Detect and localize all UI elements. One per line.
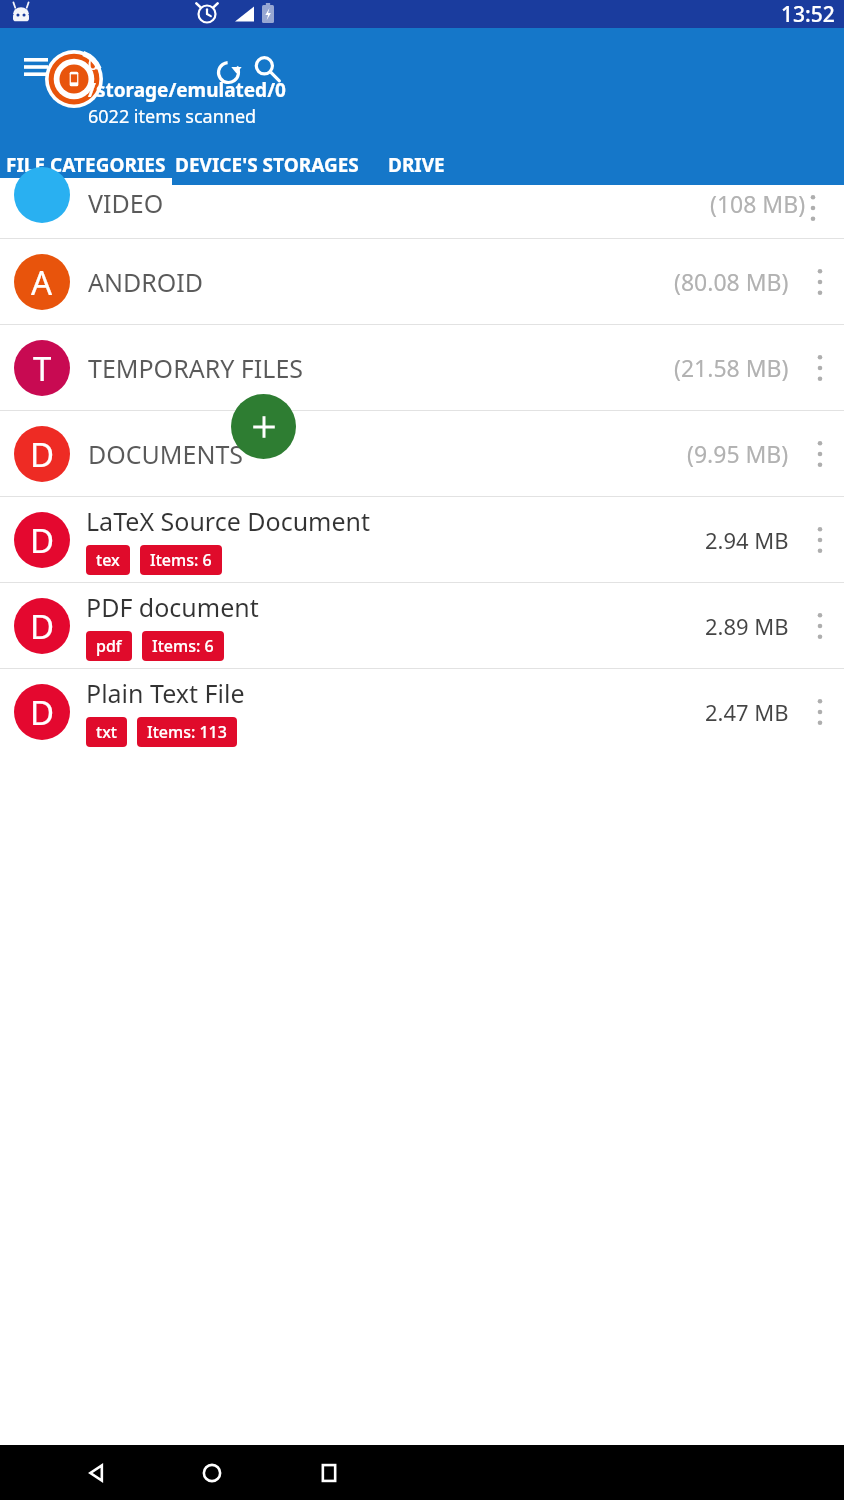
staticText: 0 [88, 52, 98, 75]
staticText: LaTeX Source Document [86, 504, 371, 538]
staticText: 6022 items scanned [88, 104, 257, 129]
staticText: /storage/emulated/0 [88, 77, 286, 103]
button[interactable]: D [0, 497, 844, 582]
staticText: DRIVE [388, 152, 445, 178]
staticText: DEVICE'S STORAGES [175, 152, 359, 178]
button[interactable]: DRIVE [362, 145, 452, 185]
staticText: D [30, 432, 55, 477]
button[interactable]: Refresh [205, 49, 251, 95]
button[interactable]: More options [797, 259, 843, 305]
staticText: Items: 113 [147, 721, 227, 743]
staticText: TEMPORARY FILES [88, 351, 674, 385]
button[interactable]: D [0, 411, 844, 496]
staticText: T [33, 346, 52, 391]
staticText: 2.89 MB [705, 611, 789, 641]
staticText: VIDEO [88, 186, 164, 220]
button[interactable]: More options [797, 431, 843, 477]
button[interactable]: More options [797, 345, 843, 391]
staticText: txt [96, 721, 117, 743]
staticText: (108 MB) [710, 188, 806, 219]
button[interactable]: Menu [13, 44, 59, 90]
button[interactable]: More options [797, 689, 843, 735]
button[interactable]: Search [243, 45, 289, 91]
button[interactable]: Back [73, 1449, 121, 1497]
button[interactable]: T [0, 325, 844, 410]
staticText: FILE CATEGORIES [6, 152, 166, 178]
staticText: 13:52 [781, 0, 835, 28]
staticText: tex [96, 549, 120, 571]
button[interactable]: A [0, 239, 844, 324]
button[interactable]: Storage [45, 50, 103, 108]
staticText: 2.47 MB [705, 697, 789, 727]
button[interactable]: FILE CATEGORIES [0, 145, 172, 185]
staticText: D [30, 518, 55, 563]
staticText: DOCUMENTS [88, 437, 687, 471]
staticText: PDF document [86, 590, 259, 624]
button[interactable]: Recent apps [305, 1449, 353, 1497]
staticText: A [31, 260, 53, 305]
staticText: D [30, 604, 55, 649]
button[interactable]: Home [188, 1449, 236, 1497]
staticText: pdf [96, 635, 122, 657]
staticText: (9.95 MB) [687, 438, 789, 469]
button[interactable]: D [0, 669, 844, 754]
staticText: 2.94 MB [705, 525, 789, 555]
staticText: Items: 6 [150, 549, 212, 571]
staticText: (21.58 MB) [674, 352, 789, 383]
staticText: Plain Text File [86, 676, 245, 710]
button[interactable]: More options [797, 603, 843, 649]
staticText: ANDROID [88, 265, 674, 299]
staticText: D [30, 690, 55, 735]
button[interactable]: More options [797, 517, 843, 563]
staticText: (80.08 MB) [674, 266, 789, 297]
staticText: Items: 6 [152, 635, 214, 657]
button[interactable]: More options [790, 185, 836, 231]
button[interactable]: D [0, 583, 844, 668]
button[interactable]: DEVICE'S STORAGES [172, 145, 362, 185]
button[interactable]: Add [231, 394, 296, 459]
